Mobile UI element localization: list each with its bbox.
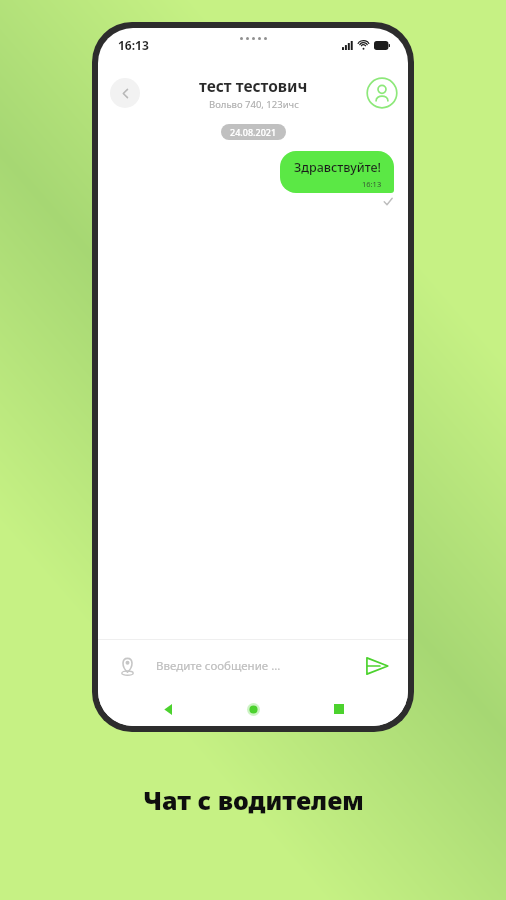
- staticText: 24.08.2021: [230, 126, 277, 138]
- button[interactable]: Recents: [323, 693, 355, 725]
- button[interactable]: Введите сообщение ...: [156, 658, 352, 674]
- button[interactable]: Home: [237, 693, 269, 725]
- staticText: Введите сообщение ...: [156, 658, 281, 674]
- button[interactable]: Здравствуйте!: [280, 151, 394, 193]
- staticText: тест тестович: [199, 75, 308, 96]
- staticText: Вольво 740, 123ичс: [209, 98, 299, 111]
- button[interactable]: Back: [110, 78, 140, 108]
- button[interactable]: Back: [152, 693, 184, 725]
- staticText: Чат с водителем: [143, 783, 364, 817]
- button[interactable]: Profile: [366, 77, 398, 109]
- staticText: 16:13: [362, 179, 382, 189]
- button[interactable]: Send location: [112, 651, 142, 681]
- button[interactable]: Send: [360, 649, 394, 683]
- staticText: 16:13: [118, 37, 149, 53]
- staticText: Здравствуйте!: [294, 159, 382, 176]
